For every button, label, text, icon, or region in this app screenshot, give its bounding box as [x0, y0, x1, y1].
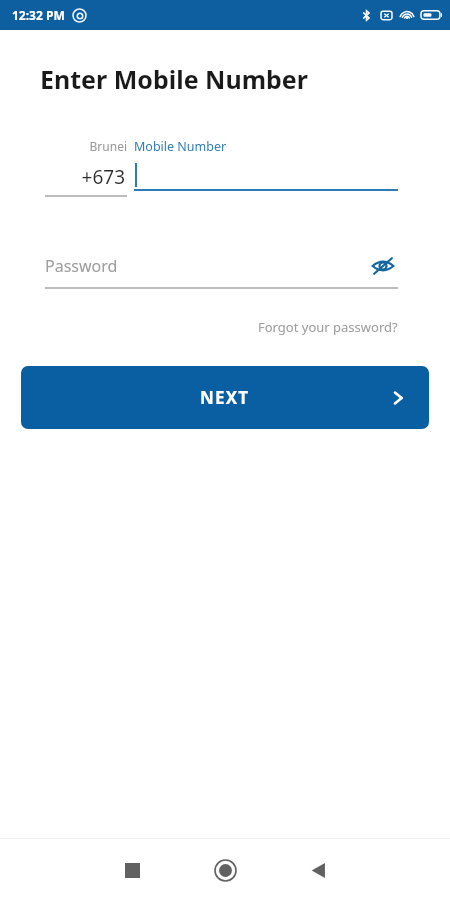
button[interactable]: NEXT [21, 366, 429, 429]
staticText: Password [45, 255, 118, 277]
staticText: +673 [45, 164, 125, 190]
button[interactable]: Mobile Number [134, 138, 398, 191]
staticText: Mobile Number [134, 138, 227, 155]
button[interactable]: Forgot your password? [258, 318, 398, 336]
staticText: 12:32 PM [12, 7, 65, 23]
staticText: Forgot your password? [258, 318, 398, 336]
button[interactable]: Brunei [45, 138, 127, 197]
button[interactable]: Back [296, 848, 340, 892]
button[interactable]: Password [45, 255, 368, 277]
staticText: Brunei [45, 138, 127, 154]
button[interactable]: Recent apps [110, 848, 154, 892]
button[interactable]: Home [203, 848, 247, 892]
staticText: Enter Mobile Number [40, 62, 308, 96]
staticText: NEXT [200, 386, 250, 409]
button[interactable]: Show password [368, 251, 398, 281]
